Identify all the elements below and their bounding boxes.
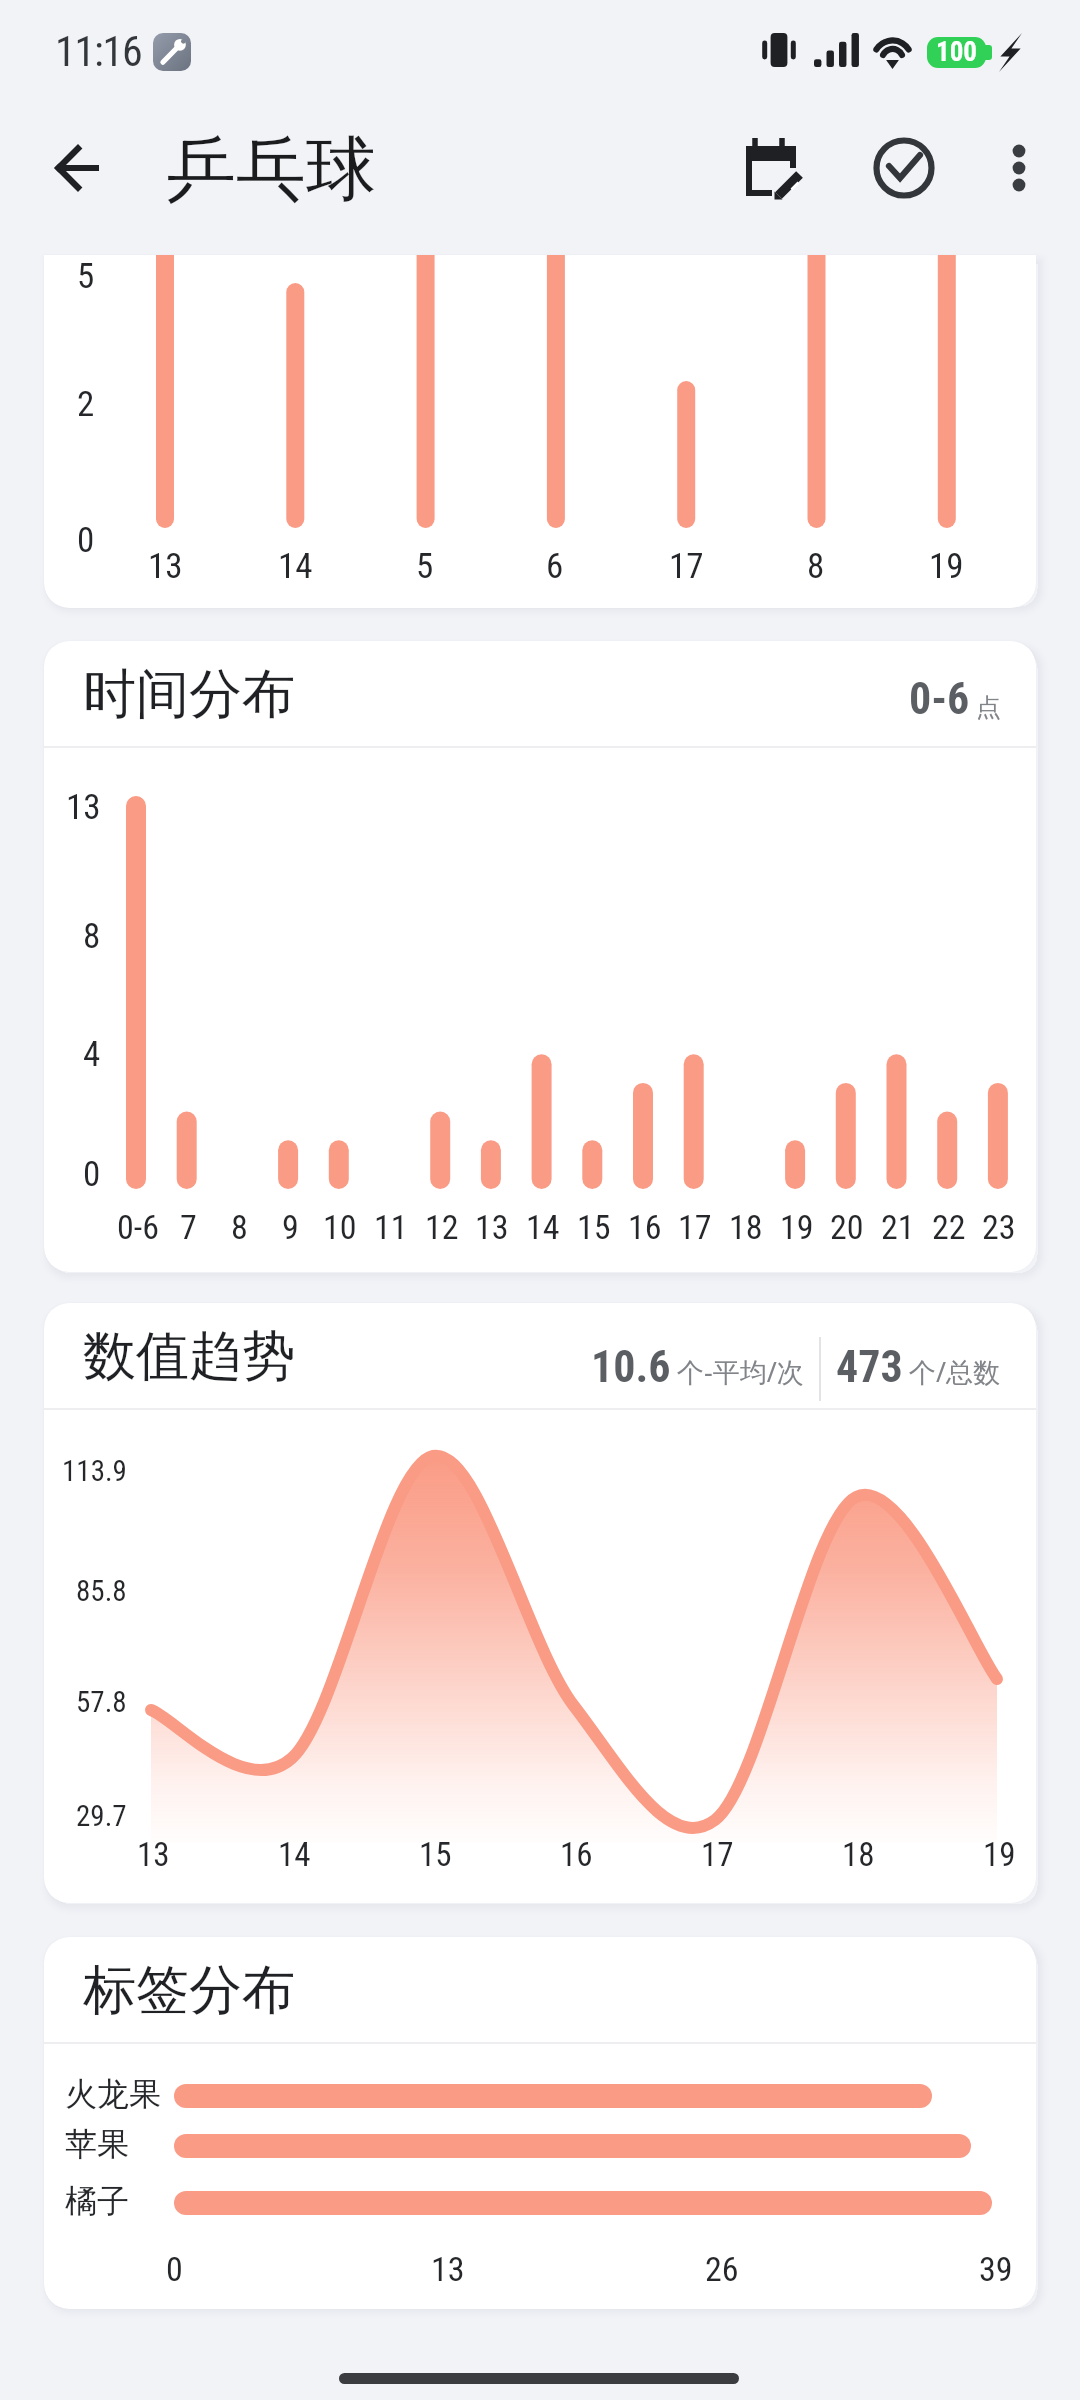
staticText: 39 xyxy=(979,2249,1013,2289)
staticText: 11:16 xyxy=(55,27,142,76)
staticText: 12 xyxy=(425,1207,459,1247)
staticText: 火龙果 xyxy=(65,2074,161,2114)
staticText: 个/总数 xyxy=(909,1353,1001,1390)
staticText: 21 xyxy=(881,1207,915,1247)
staticText: 5 xyxy=(416,546,434,587)
staticText: 17 xyxy=(678,1207,712,1247)
staticText: 8 xyxy=(231,1207,248,1247)
staticText: 13 xyxy=(148,546,183,587)
staticText: 20 xyxy=(830,1207,864,1247)
button[interactable]: Back xyxy=(35,120,131,216)
staticText: 2 xyxy=(77,384,95,425)
staticText: 15 xyxy=(419,1835,452,1874)
staticText: 13 xyxy=(431,2249,465,2289)
staticText: 0-6 xyxy=(117,1207,160,1247)
staticText: 时间分布 xyxy=(83,661,295,728)
button[interactable]: More options xyxy=(971,120,1067,216)
staticText: 17 xyxy=(701,1835,734,1874)
staticText: 19 xyxy=(983,1835,1016,1874)
staticText: 10 xyxy=(323,1207,357,1247)
staticText: 标签分布 xyxy=(83,1957,295,2024)
staticText: 14 xyxy=(526,1207,560,1247)
staticText: 473 xyxy=(836,1341,903,1393)
staticText: 6 xyxy=(546,546,564,587)
staticText: 19 xyxy=(780,1207,814,1247)
staticText: 100 xyxy=(936,37,977,67)
staticText: 8 xyxy=(807,546,825,587)
staticText: 8 xyxy=(83,916,101,957)
staticText: 18 xyxy=(842,1835,875,1874)
staticText: 22 xyxy=(932,1207,966,1247)
staticText: 0 xyxy=(77,520,95,561)
staticText: 113.9 xyxy=(62,1454,127,1488)
staticText: 17 xyxy=(669,546,704,587)
staticText: 16 xyxy=(628,1207,662,1247)
staticText: 10.6 xyxy=(591,1341,671,1393)
staticText: 29.7 xyxy=(76,1799,127,1833)
staticText: 23 xyxy=(982,1207,1016,1247)
staticText: 15 xyxy=(577,1207,611,1247)
staticText: 19 xyxy=(929,546,964,587)
staticText: 0 xyxy=(166,2249,183,2289)
staticText: 5 xyxy=(77,256,95,297)
button[interactable]: Done xyxy=(856,120,952,216)
staticText: 0 xyxy=(83,1154,101,1195)
staticText: 13 xyxy=(66,787,101,828)
staticText: 11 xyxy=(374,1207,408,1247)
staticText: 14 xyxy=(278,1835,311,1874)
staticText: 0-6 xyxy=(909,673,970,725)
staticText: 57.8 xyxy=(76,1685,127,1719)
staticText: 14 xyxy=(278,546,313,587)
staticText: 4 xyxy=(83,1034,101,1075)
staticText: 7 xyxy=(180,1207,197,1247)
staticText: 橘子 xyxy=(65,2181,129,2221)
staticText: 85.8 xyxy=(76,1574,127,1608)
staticText: 9 xyxy=(282,1207,299,1247)
staticText: 26 xyxy=(705,2249,739,2289)
staticText: 个-平均/次 xyxy=(677,1353,804,1390)
staticText: 13 xyxy=(137,1835,170,1874)
staticText: 乒乓球 xyxy=(166,126,376,214)
staticText: 16 xyxy=(560,1835,593,1874)
staticText: 苹果 xyxy=(65,2124,129,2164)
staticText: 13 xyxy=(475,1207,509,1247)
staticText: 18 xyxy=(729,1207,763,1247)
staticText: 数值趋势 xyxy=(83,1323,295,1390)
button[interactable]: Edit date xyxy=(726,119,822,215)
staticText: 点 xyxy=(976,692,1001,723)
